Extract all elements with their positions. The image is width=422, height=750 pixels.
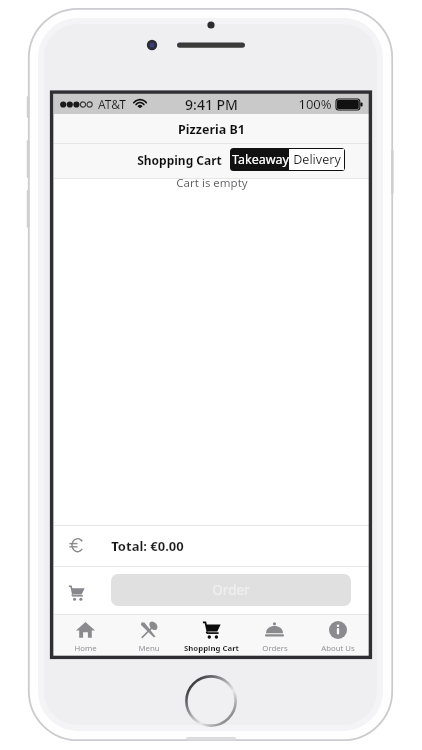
staticText: Menu xyxy=(138,643,160,654)
staticText: Home xyxy=(74,643,97,654)
button[interactable]: Takeaway xyxy=(231,149,289,170)
button[interactable]: Delivery xyxy=(289,149,344,170)
staticText: Cart is empty xyxy=(176,175,248,191)
staticText: Order xyxy=(212,581,250,599)
button[interactable]: Shopping Cart xyxy=(180,614,243,656)
staticText: Shopping Cart xyxy=(137,152,222,168)
staticText: 100% xyxy=(298,95,332,113)
staticText: Total: €0.00 xyxy=(111,537,184,555)
button[interactable]: About Us xyxy=(306,614,369,656)
staticText: About Us xyxy=(321,643,355,654)
button[interactable]: Menu xyxy=(117,614,180,656)
staticText: Pizzeria B1 xyxy=(178,121,245,138)
staticText: Delivery xyxy=(293,151,341,168)
button[interactable]: Orders xyxy=(243,614,306,656)
staticText: Orders xyxy=(262,643,288,654)
staticText: AT&T xyxy=(98,96,126,112)
staticText: Shopping Cart xyxy=(184,643,239,654)
staticText: Takeaway xyxy=(232,151,289,168)
staticText: 9:41 PM xyxy=(185,95,238,114)
button[interactable]: Home xyxy=(54,614,117,656)
